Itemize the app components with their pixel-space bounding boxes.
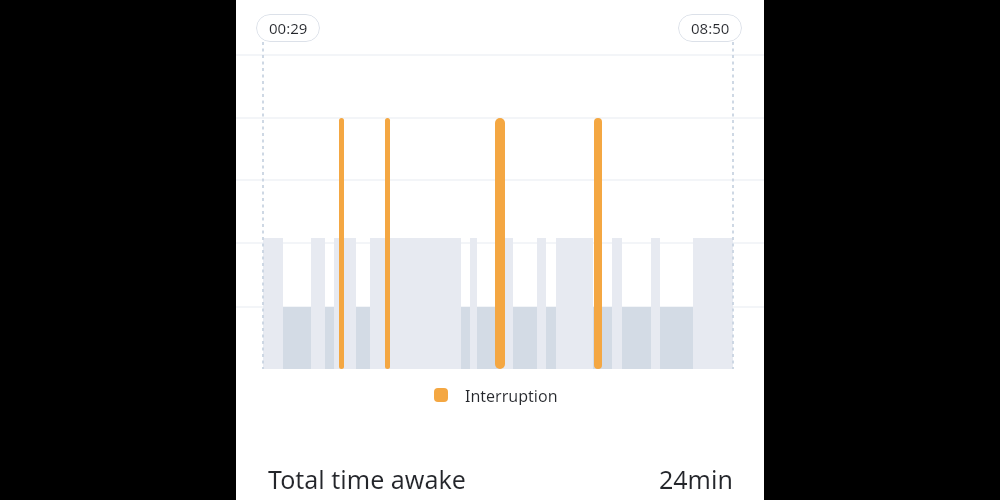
staticText: Interruption [465, 385, 558, 405]
staticText: 24min [659, 462, 733, 496]
staticText: 00:29 [269, 18, 308, 38]
button[interactable]: Time 00:29 [256, 14, 320, 42]
staticText: Total time awake [268, 462, 466, 496]
button[interactable]: Time 08:50 [678, 14, 742, 42]
button[interactable]: Interruption [434, 385, 558, 405]
staticText: 08:50 [691, 18, 730, 38]
